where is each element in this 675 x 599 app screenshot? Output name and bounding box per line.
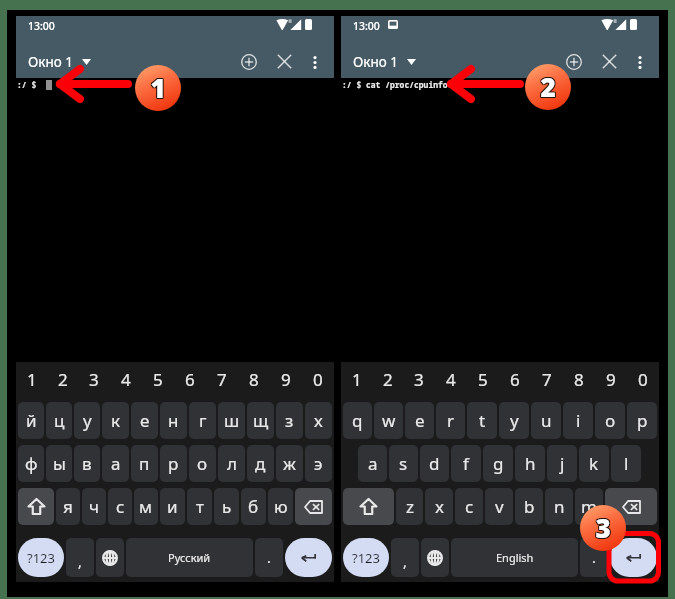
button[interactable]: 4 [110, 362, 142, 399]
button[interactable]: i [563, 402, 593, 439]
button[interactable]: Change language [96, 538, 124, 577]
button[interactable]: а [102, 445, 129, 482]
button[interactable]: , [66, 538, 94, 577]
button[interactable]: . [580, 538, 608, 577]
button[interactable]: 0 [302, 362, 334, 399]
button[interactable]: Backspace [295, 488, 332, 525]
button[interactable]: j [547, 445, 577, 482]
button[interactable]: з [276, 402, 303, 439]
button[interactable]: d [420, 445, 449, 482]
button[interactable]: ц [46, 402, 72, 439]
button[interactable]: ?123 [18, 538, 64, 577]
button[interactable]: 7 [206, 362, 238, 399]
button[interactable]: с [108, 488, 132, 525]
button[interactable]: х [305, 402, 332, 439]
button[interactable]: f [451, 445, 481, 482]
button[interactable]: p [627, 402, 657, 439]
button[interactable]: x [425, 488, 453, 525]
button[interactable]: c [455, 488, 483, 525]
button[interactable]: Add window [557, 45, 590, 78]
button[interactable]: м [134, 488, 158, 525]
button[interactable]: Окно 1 [353, 53, 420, 71]
button[interactable]: e [405, 402, 434, 439]
button[interactable]: z [396, 488, 423, 525]
button[interactable]: Close [593, 45, 626, 78]
button[interactable]: 5 [467, 362, 499, 399]
button[interactable]: , [391, 538, 419, 577]
button[interactable]: Shift [343, 488, 394, 525]
button[interactable]: b [515, 488, 543, 525]
button[interactable]: д [247, 445, 274, 482]
button[interactable]: k [579, 445, 609, 482]
button[interactable]: Backspace [605, 488, 657, 525]
button[interactable]: s [389, 445, 418, 482]
button[interactable]: 3 [403, 362, 435, 399]
button[interactable]: 8 [238, 362, 270, 399]
button[interactable]: щ [247, 402, 274, 439]
button[interactable]: w [374, 402, 403, 439]
button[interactable]: р [160, 445, 187, 482]
button[interactable]: English [451, 538, 578, 577]
button[interactable]: 8 [563, 362, 595, 399]
button[interactable]: ь [214, 488, 239, 525]
button[interactable]: 5 [142, 362, 174, 399]
button[interactable]: 3 [78, 362, 110, 399]
button[interactable]: б [241, 488, 266, 525]
button[interactable]: g [483, 445, 513, 482]
button[interactable]: q [343, 402, 372, 439]
button[interactable]: Окно 1 [28, 53, 95, 71]
button[interactable]: More options [629, 51, 651, 73]
button[interactable]: 1 [341, 362, 372, 399]
button[interactable]: m [575, 488, 603, 525]
button[interactable]: я [56, 488, 80, 525]
button[interactable]: т [187, 488, 212, 525]
button[interactable]: Add window [232, 45, 265, 78]
button[interactable]: Change language [421, 538, 449, 577]
button[interactable]: ж [276, 445, 303, 482]
button[interactable]: Close [268, 45, 301, 78]
button[interactable]: ю [268, 488, 293, 525]
button[interactable]: r [436, 402, 465, 439]
button[interactable]: a [358, 445, 387, 482]
button[interactable]: и [160, 488, 185, 525]
button[interactable]: t [467, 402, 497, 439]
button[interactable]: ч [82, 488, 106, 525]
button[interactable]: Русский [126, 538, 253, 577]
button[interactable]: Shift [18, 488, 54, 525]
button[interactable]: в [74, 445, 100, 482]
button[interactable]: г [189, 402, 216, 439]
button[interactable]: ф [18, 445, 44, 482]
button[interactable]: h [515, 445, 545, 482]
button[interactable]: 0 [627, 362, 659, 399]
button[interactable]: й [18, 402, 44, 439]
button[interactable]: о [189, 445, 216, 482]
button[interactable]: 4 [435, 362, 467, 399]
button[interactable]: 9 [270, 362, 302, 399]
button[interactable]: l [611, 445, 641, 482]
button[interactable]: 2 [47, 362, 78, 399]
button[interactable]: Enter [285, 538, 332, 577]
button[interactable]: ы [46, 445, 72, 482]
button[interactable]: 1 [16, 362, 47, 399]
button[interactable]: е [131, 402, 158, 439]
button[interactable]: к [102, 402, 129, 439]
button[interactable]: 2 [372, 362, 403, 399]
button[interactable]: э [305, 445, 332, 482]
button[interactable]: . [255, 538, 283, 577]
button[interactable]: 9 [595, 362, 627, 399]
button[interactable]: 7 [531, 362, 563, 399]
button[interactable]: Enter [610, 538, 657, 577]
button[interactable]: n [545, 488, 573, 525]
button[interactable]: п [131, 445, 158, 482]
button[interactable]: u [531, 402, 561, 439]
button[interactable]: 6 [499, 362, 531, 399]
button[interactable]: л [218, 445, 245, 482]
button[interactable]: ш [218, 402, 245, 439]
button[interactable]: н [160, 402, 187, 439]
button[interactable]: 6 [174, 362, 206, 399]
button[interactable]: ?123 [343, 538, 389, 577]
button[interactable]: o [595, 402, 625, 439]
button[interactable]: у [74, 402, 100, 439]
button[interactable]: v [485, 488, 513, 525]
button[interactable]: More options [304, 51, 326, 73]
